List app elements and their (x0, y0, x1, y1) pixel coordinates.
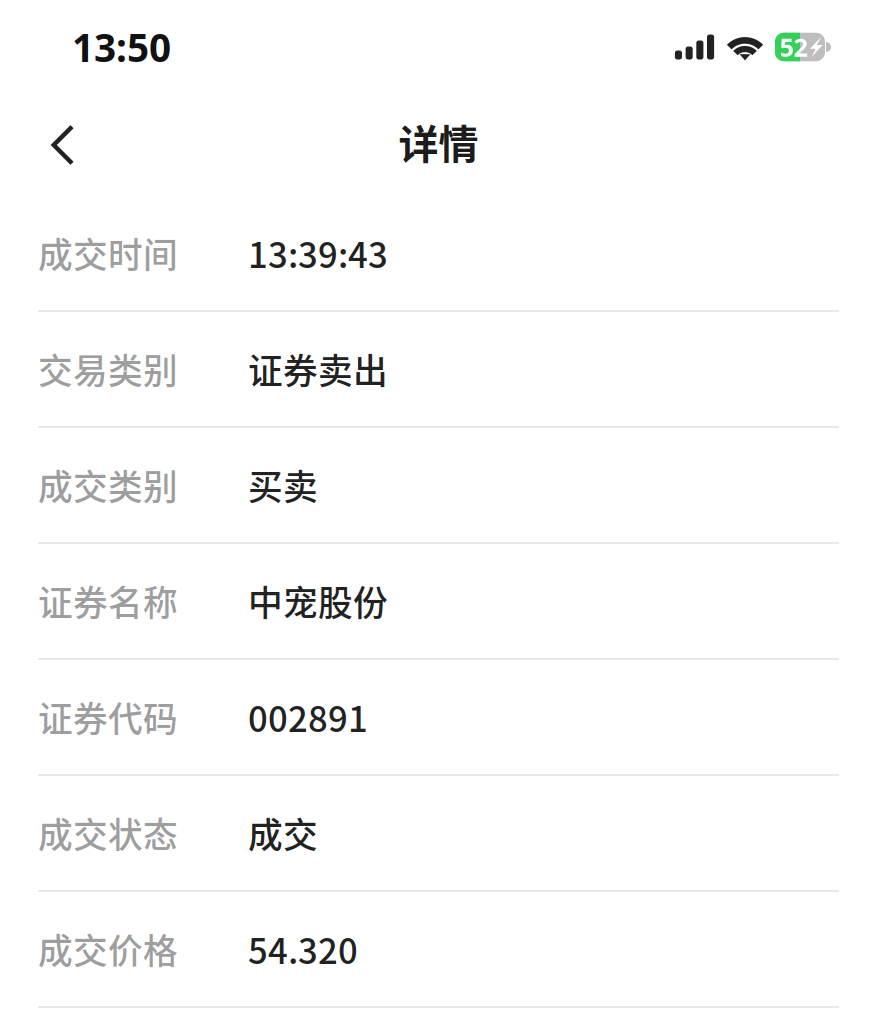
staticText: 详情 (398, 112, 478, 170)
staticText: 成交类别 (38, 460, 178, 510)
staticText: 证券名称 (38, 576, 178, 626)
staticText: 成交价格 (38, 924, 178, 974)
staticText: 证券代码 (38, 692, 178, 742)
staticText: 002891 (248, 692, 368, 742)
staticText: 证券卖出 (248, 344, 388, 394)
staticText: 54.320 (248, 924, 358, 974)
staticText: 交易类别 (38, 344, 178, 394)
staticText: 中宠股份 (248, 576, 388, 626)
staticText: 成交时间 (38, 228, 178, 278)
staticText: 13:39:43 (248, 228, 388, 278)
staticText: 52 (779, 30, 807, 64)
staticText: 13:50 (72, 21, 171, 73)
staticText: 成交状态 (38, 808, 178, 858)
button[interactable]: Back (30, 112, 96, 178)
staticText: 成交 (248, 808, 318, 858)
staticText: 买卖 (248, 460, 318, 510)
